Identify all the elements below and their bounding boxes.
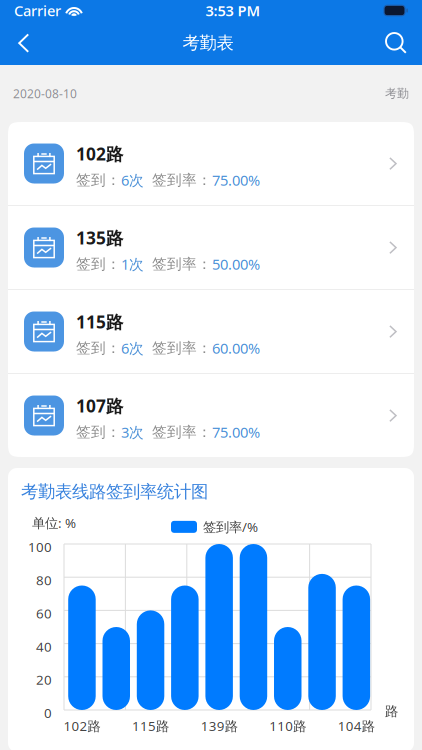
staticText: 3次 — [121, 422, 144, 442]
staticText: 3:53 PM — [205, 1, 260, 20]
button[interactable]: 135路 — [8, 206, 414, 289]
staticText: 75.00% — [212, 422, 260, 442]
staticText: 102路 — [63, 717, 100, 735]
button[interactable]: 102路 — [8, 122, 414, 205]
staticText: 20 — [36, 671, 52, 688]
staticText: 签到： — [76, 423, 121, 441]
staticText: 签到： — [76, 171, 121, 189]
staticText: 104路 — [338, 717, 375, 735]
staticText: 115路 — [76, 310, 123, 333]
staticText: 路 — [385, 703, 398, 719]
staticText: 75.00% — [212, 170, 260, 190]
staticText: 139路 — [201, 717, 238, 735]
staticText: 135路 — [76, 226, 123, 249]
staticText: 1次 — [121, 254, 144, 274]
staticText: 签到率： — [144, 423, 212, 441]
staticText: 考勤 — [385, 86, 409, 101]
staticText: 107路 — [76, 394, 123, 417]
staticText: 115路 — [132, 717, 169, 735]
staticText: 签到： — [76, 339, 121, 357]
staticText: 考勤表线路签到率统计图 — [21, 481, 208, 502]
staticText: Carrier — [14, 1, 61, 20]
button[interactable]: Search — [371, 21, 422, 65]
staticText: 60 — [36, 604, 52, 622]
staticText: 100 — [28, 538, 52, 556]
staticText: 签到率/% — [203, 518, 258, 536]
staticText: 80 — [36, 571, 52, 589]
staticText: 40 — [36, 638, 52, 655]
staticText: 2020-08-10 — [13, 85, 77, 101]
staticText: 考勤表 — [182, 32, 233, 54]
staticText: 签到率： — [144, 171, 212, 189]
staticText: 单位: % — [32, 514, 76, 532]
staticText: 签到： — [76, 255, 121, 273]
staticText: 6次 — [121, 170, 144, 190]
staticText: 110路 — [269, 717, 306, 735]
staticText: 6次 — [121, 338, 144, 358]
staticText: 60.00% — [212, 338, 260, 358]
staticText: 签到率： — [144, 255, 212, 273]
staticText: 签到率： — [144, 339, 212, 357]
staticText: 102路 — [76, 142, 123, 165]
staticText: 50.00% — [212, 254, 260, 274]
button[interactable]: 115路 — [8, 290, 414, 373]
staticText: 0 — [44, 704, 52, 722]
button[interactable]: 107路 — [8, 374, 414, 457]
button[interactable]: Back — [0, 21, 45, 65]
